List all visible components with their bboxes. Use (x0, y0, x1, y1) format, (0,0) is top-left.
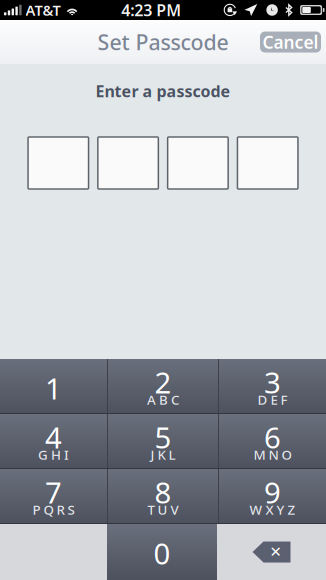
staticText: 9 (264, 472, 281, 511)
staticText: J K L (150, 446, 175, 463)
button[interactable]: 2 (108, 359, 218, 414)
staticText: 5 (154, 417, 171, 456)
staticText: 7 (45, 472, 62, 511)
button[interactable]: 0 (107, 524, 217, 580)
staticText: W X Y Z (249, 501, 295, 518)
staticText: P Q R S (32, 501, 74, 518)
staticText: A B C (147, 391, 179, 408)
staticText: D E F (257, 391, 287, 408)
staticText: 3 (264, 362, 281, 401)
button[interactable]: 6 (219, 414, 326, 469)
staticText: Set Passcode (97, 28, 228, 56)
staticText: ✕ (269, 544, 281, 560)
staticText: 4:23 PM (121, 0, 181, 21)
button[interactable]: 7 (0, 469, 107, 524)
staticText: T U V (147, 501, 178, 518)
button[interactable]: 5 (108, 414, 218, 469)
staticText: Cancel (262, 30, 318, 53)
staticText: M N O (253, 446, 291, 463)
staticText: 2 (154, 362, 171, 401)
button[interactable]: Delete (252, 541, 290, 562)
staticText: 4 (45, 417, 62, 456)
staticText: Enter a passcode (95, 80, 230, 102)
staticText: 6 (264, 417, 281, 456)
staticText: 1 (45, 368, 62, 407)
staticText: 8 (154, 472, 171, 511)
staticText: G H I (38, 446, 69, 463)
button[interactable]: Cancel (260, 31, 321, 52)
staticText: 0 (153, 533, 170, 572)
button[interactable]: 8 (108, 469, 218, 524)
button[interactable]: 4 (0, 414, 107, 469)
button[interactable]: 3 (219, 359, 326, 414)
staticText: AT&T (26, 0, 61, 20)
button[interactable]: 1 (0, 359, 107, 414)
button[interactable]: 9 (219, 469, 326, 524)
